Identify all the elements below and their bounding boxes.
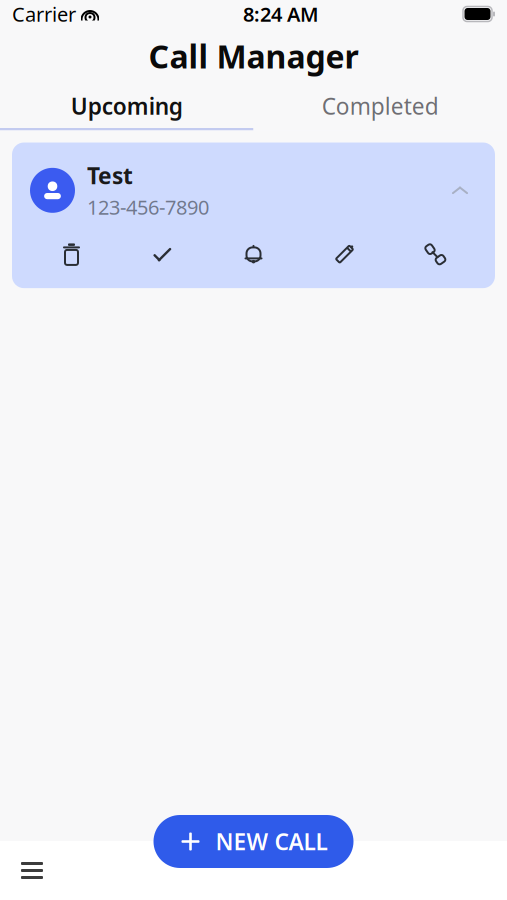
button[interactable]: Menu	[8, 846, 56, 894]
button[interactable]: NEW CALL	[153, 815, 353, 868]
button[interactable]: Reminder	[208, 234, 299, 274]
staticText: 8:24 AM	[243, 1, 319, 27]
staticText: Carrier	[12, 1, 76, 27]
staticText: Upcoming	[71, 91, 183, 121]
staticText: 123-456-7890	[87, 194, 209, 220]
button[interactable]: Completed	[253, 84, 507, 128]
button[interactable]: Mark complete	[117, 234, 208, 274]
button[interactable]: Delete	[26, 234, 117, 274]
button[interactable]: Call	[390, 234, 481, 274]
staticText: NEW CALL	[215, 826, 327, 856]
staticText: Completed	[322, 91, 439, 121]
button[interactable]: Edit	[299, 234, 390, 274]
staticText: Test	[87, 160, 133, 191]
button[interactable]: Upcoming	[0, 84, 253, 128]
button[interactable]: Collapse	[443, 173, 477, 207]
staticText: Call Manager	[148, 35, 358, 77]
